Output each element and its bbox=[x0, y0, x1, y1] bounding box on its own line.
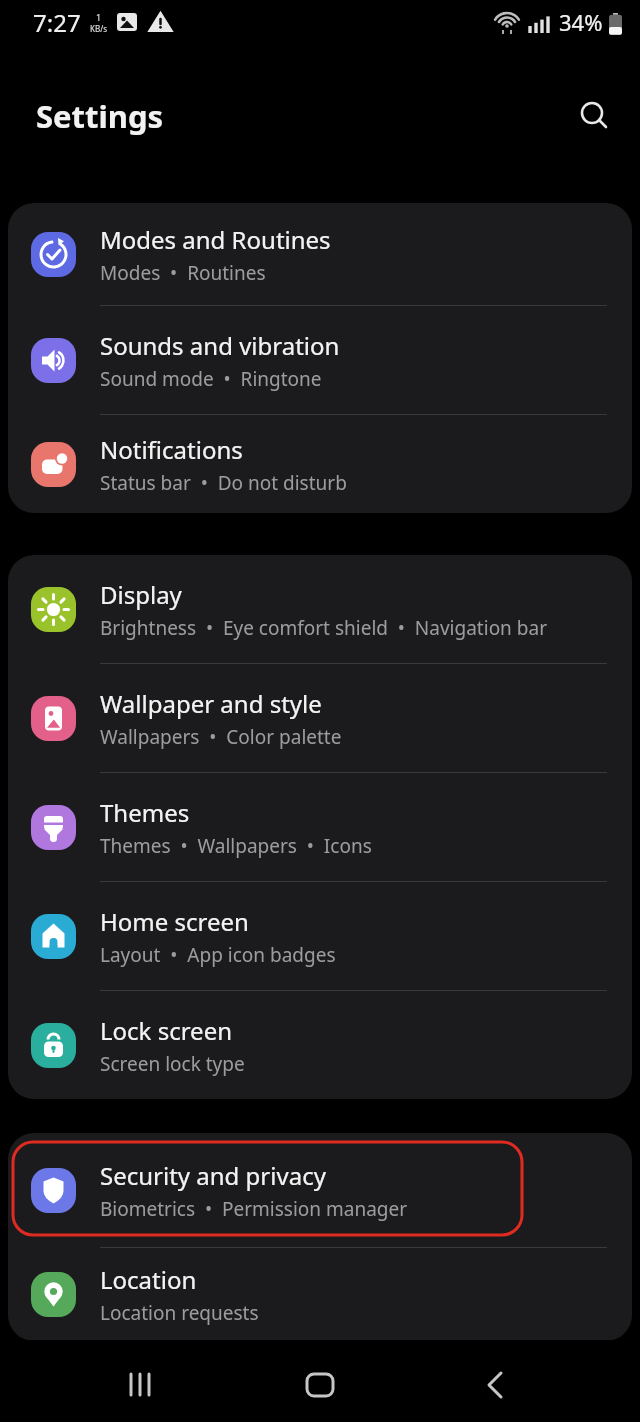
button[interactable]: Sounds and vibration bbox=[8, 306, 632, 414]
staticText: Wallpaper and style bbox=[100, 687, 322, 720]
staticText: 7:27 bbox=[33, 6, 81, 39]
staticText: Wallpapers • Color palette bbox=[100, 724, 342, 750]
staticText: 1 bbox=[96, 11, 102, 23]
button[interactable]: Home screen bbox=[8, 882, 632, 990]
staticText: Security and privacy bbox=[100, 1159, 326, 1192]
staticText: Sounds and vibration bbox=[100, 329, 340, 362]
button[interactable]: Lock screen bbox=[8, 991, 632, 1099]
staticText: Location requests bbox=[100, 1300, 259, 1326]
staticText: Modes • Routines bbox=[100, 260, 266, 286]
button[interactable] bbox=[125, 1369, 157, 1401]
button[interactable] bbox=[576, 98, 612, 134]
staticText: Layout • App icon badges bbox=[100, 942, 336, 968]
button[interactable]: Display bbox=[8, 555, 632, 663]
staticText: Settings bbox=[36, 95, 164, 137]
button[interactable]: Modes and Routines bbox=[8, 203, 632, 305]
staticText: Biometrics • Permission manager bbox=[100, 1196, 408, 1222]
button[interactable]: Themes bbox=[8, 773, 632, 881]
staticText: Lock screen bbox=[100, 1014, 233, 1047]
staticText: Themes bbox=[100, 796, 190, 829]
button[interactable]: Wallpaper and style bbox=[8, 664, 632, 772]
staticText: Display bbox=[100, 578, 182, 611]
button[interactable] bbox=[304, 1369, 336, 1401]
staticText: Location bbox=[100, 1263, 197, 1296]
staticText: Themes • Wallpapers • Icons bbox=[100, 833, 372, 859]
staticText: Modes and Routines bbox=[100, 223, 331, 256]
button[interactable]: Notifications bbox=[8, 415, 632, 513]
staticText: Home screen bbox=[100, 905, 249, 938]
staticText: 34% bbox=[559, 7, 603, 37]
button[interactable]: Location bbox=[8, 1248, 632, 1341]
staticText: Notifications bbox=[100, 433, 243, 466]
staticText: Sound mode • Ringtone bbox=[100, 366, 322, 392]
button[interactable] bbox=[480, 1369, 512, 1401]
button[interactable]: Security and privacy bbox=[8, 1133, 632, 1247]
staticText: KB/s bbox=[90, 23, 107, 34]
staticText: Screen lock type bbox=[100, 1051, 245, 1077]
staticText: Status bar • Do not disturb bbox=[100, 470, 347, 496]
staticText: Brightness • Eye comfort shield • Naviga… bbox=[100, 615, 547, 641]
